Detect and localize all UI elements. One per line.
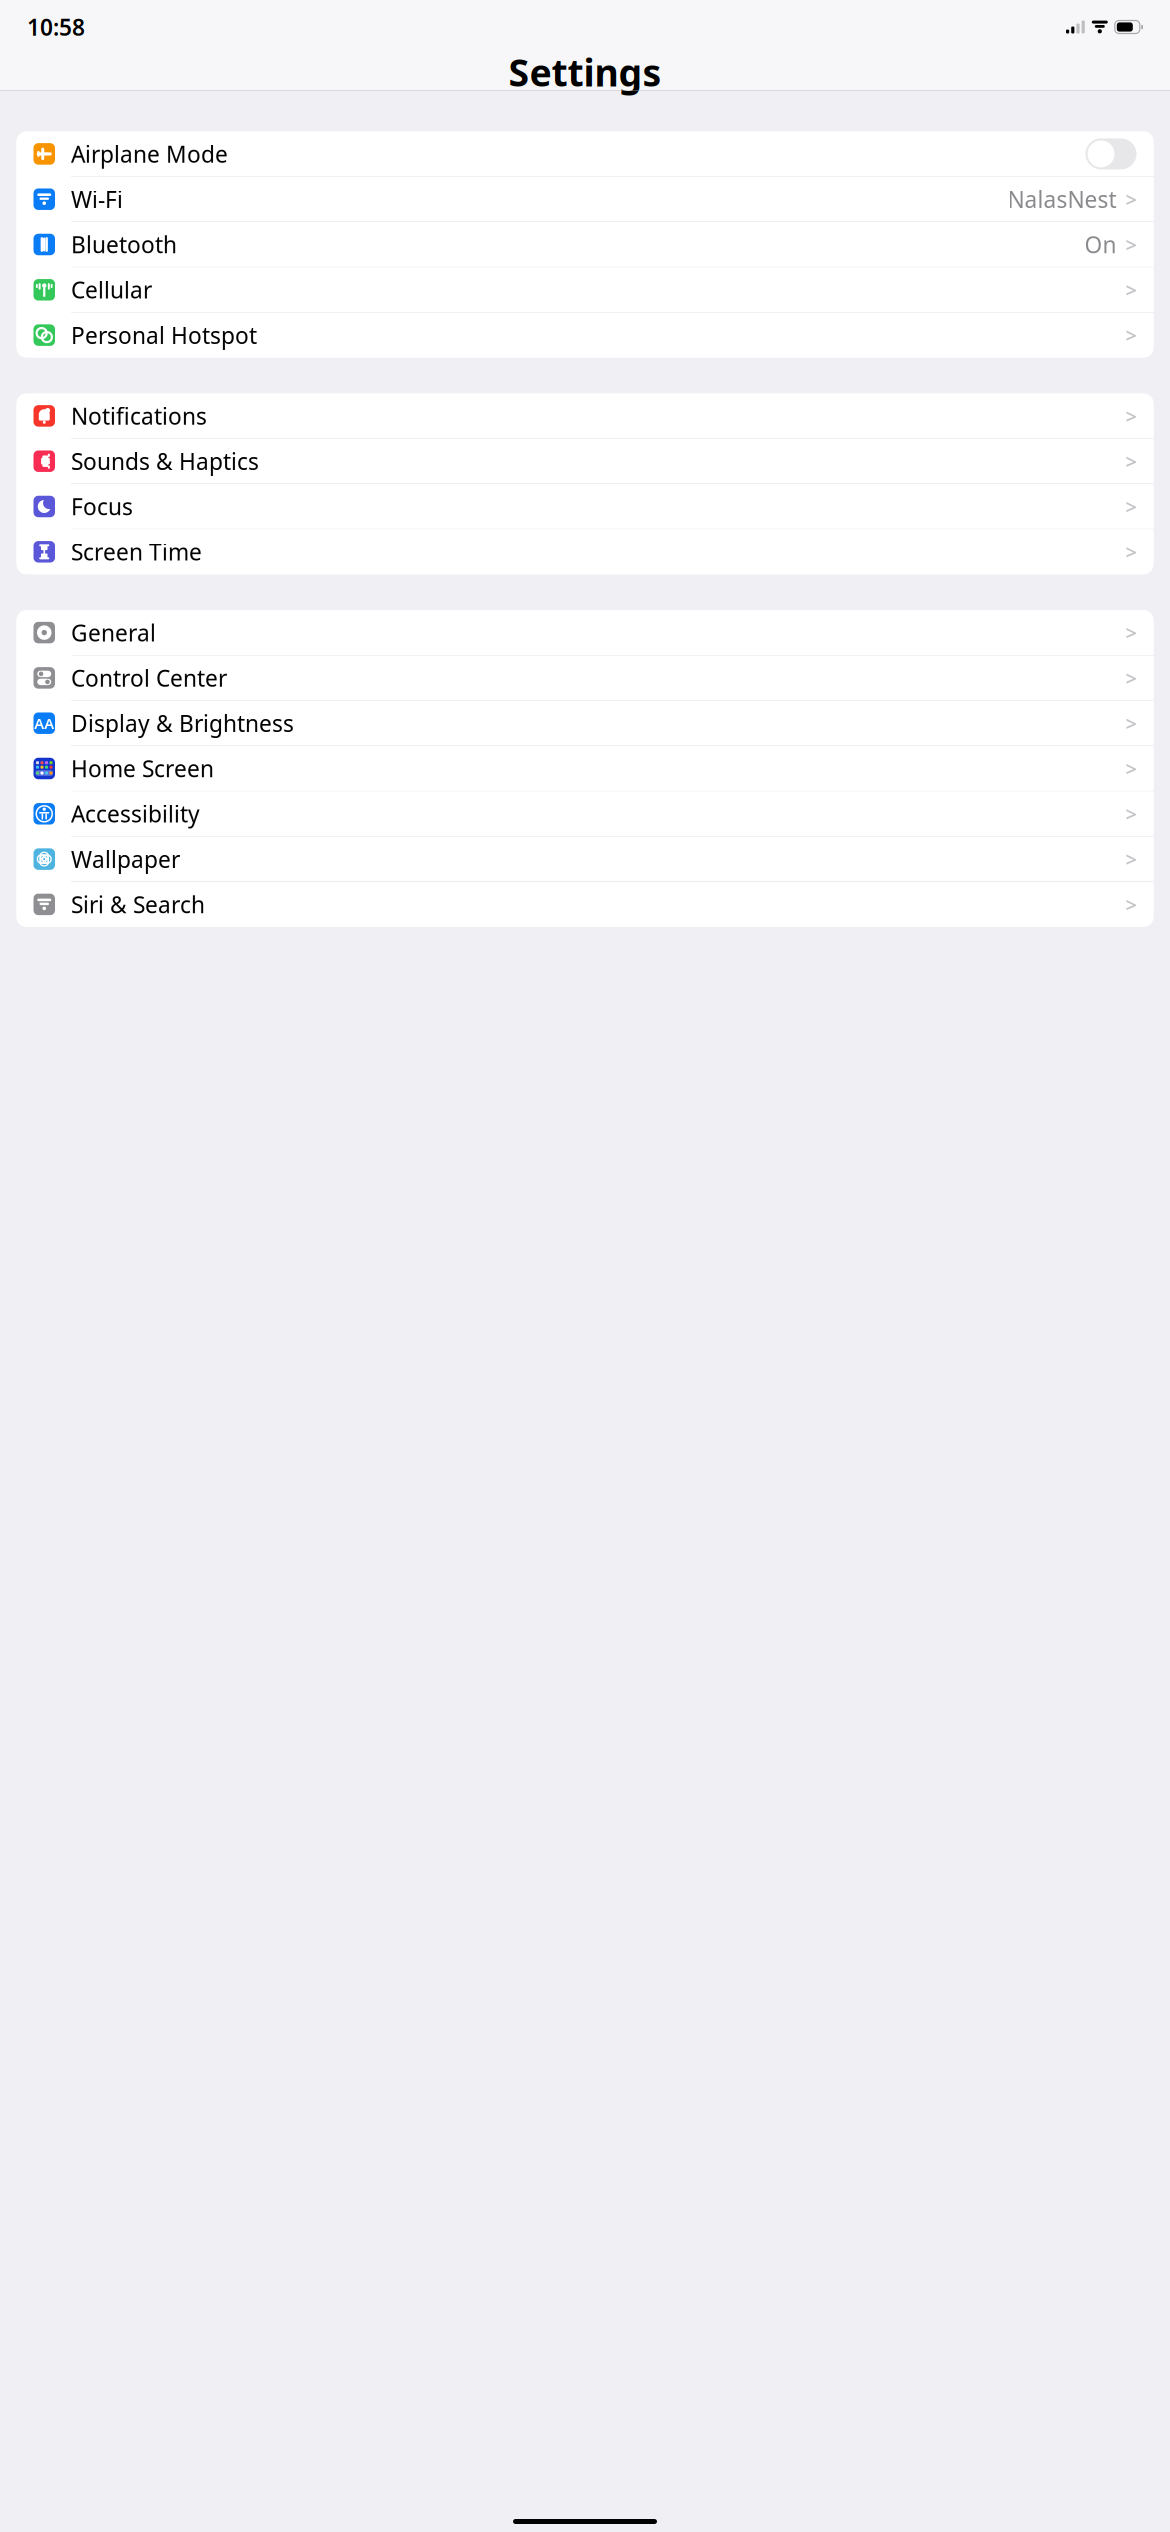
staticText: 10:58 xyxy=(27,12,85,42)
staticText: NalasNest xyxy=(1007,184,1116,214)
staticText: > xyxy=(1125,710,1136,736)
staticText: Screen Time xyxy=(71,537,202,567)
staticText: Wi-Fi xyxy=(71,184,123,214)
staticText: > xyxy=(1125,665,1136,691)
button[interactable]: Airplane Mode xyxy=(16,131,1153,176)
staticText: > xyxy=(1125,231,1136,258)
button[interactable]: Cellular xyxy=(16,267,1153,312)
staticText: > xyxy=(1125,276,1136,303)
staticText: Siri & Search xyxy=(71,889,205,919)
staticText: > xyxy=(1125,403,1136,429)
staticText: > xyxy=(1125,846,1136,872)
button[interactable]: Accessibility xyxy=(16,791,1153,836)
staticText: > xyxy=(1125,755,1136,782)
staticText: Display & Brightness xyxy=(71,708,294,738)
staticText: > xyxy=(1125,322,1136,348)
staticText: > xyxy=(1125,891,1136,918)
staticText: > xyxy=(1125,186,1136,212)
staticText: > xyxy=(1125,493,1136,520)
staticText: Sounds & Haptics xyxy=(71,446,259,476)
staticText: Wallpaper xyxy=(71,844,180,874)
staticText: On xyxy=(1084,229,1116,259)
staticText: Personal Hotspot xyxy=(71,320,257,350)
button[interactable]: Bluetooth xyxy=(16,222,1153,267)
button[interactable]: Wallpaper xyxy=(16,837,1153,881)
button[interactable]: AA xyxy=(16,701,1153,746)
staticText: > xyxy=(1125,448,1136,474)
staticText: Focus xyxy=(71,491,133,521)
staticText: Cellular xyxy=(71,275,152,305)
staticText: Notifications xyxy=(71,401,207,431)
staticText: Bluetooth xyxy=(71,229,177,259)
staticText: Airplane Mode xyxy=(71,139,228,169)
staticText: General xyxy=(71,617,156,648)
button[interactable]: Screen Time xyxy=(16,529,1153,574)
staticText: Accessibility xyxy=(71,799,200,829)
button[interactable]: Control Center xyxy=(16,655,1153,700)
staticText: > xyxy=(1125,800,1136,827)
button[interactable]: Notifications xyxy=(16,393,1153,438)
button[interactable]: Focus xyxy=(16,484,1153,529)
staticText: > xyxy=(1125,619,1136,646)
staticText: Control Center xyxy=(71,663,227,693)
staticText: AA xyxy=(34,713,54,733)
staticText: > xyxy=(1125,538,1136,565)
button[interactable]: Sounds & Haptics xyxy=(16,439,1153,484)
staticText: Settings xyxy=(508,47,661,97)
button[interactable]: Home Screen xyxy=(16,746,1153,791)
button[interactable]: General xyxy=(16,610,1153,655)
staticText: Home Screen xyxy=(71,753,214,783)
button[interactable]: Wi-Fi xyxy=(16,177,1153,222)
button[interactable]: Personal Hotspot xyxy=(16,313,1153,357)
button[interactable]: Siri & Search xyxy=(16,882,1153,927)
